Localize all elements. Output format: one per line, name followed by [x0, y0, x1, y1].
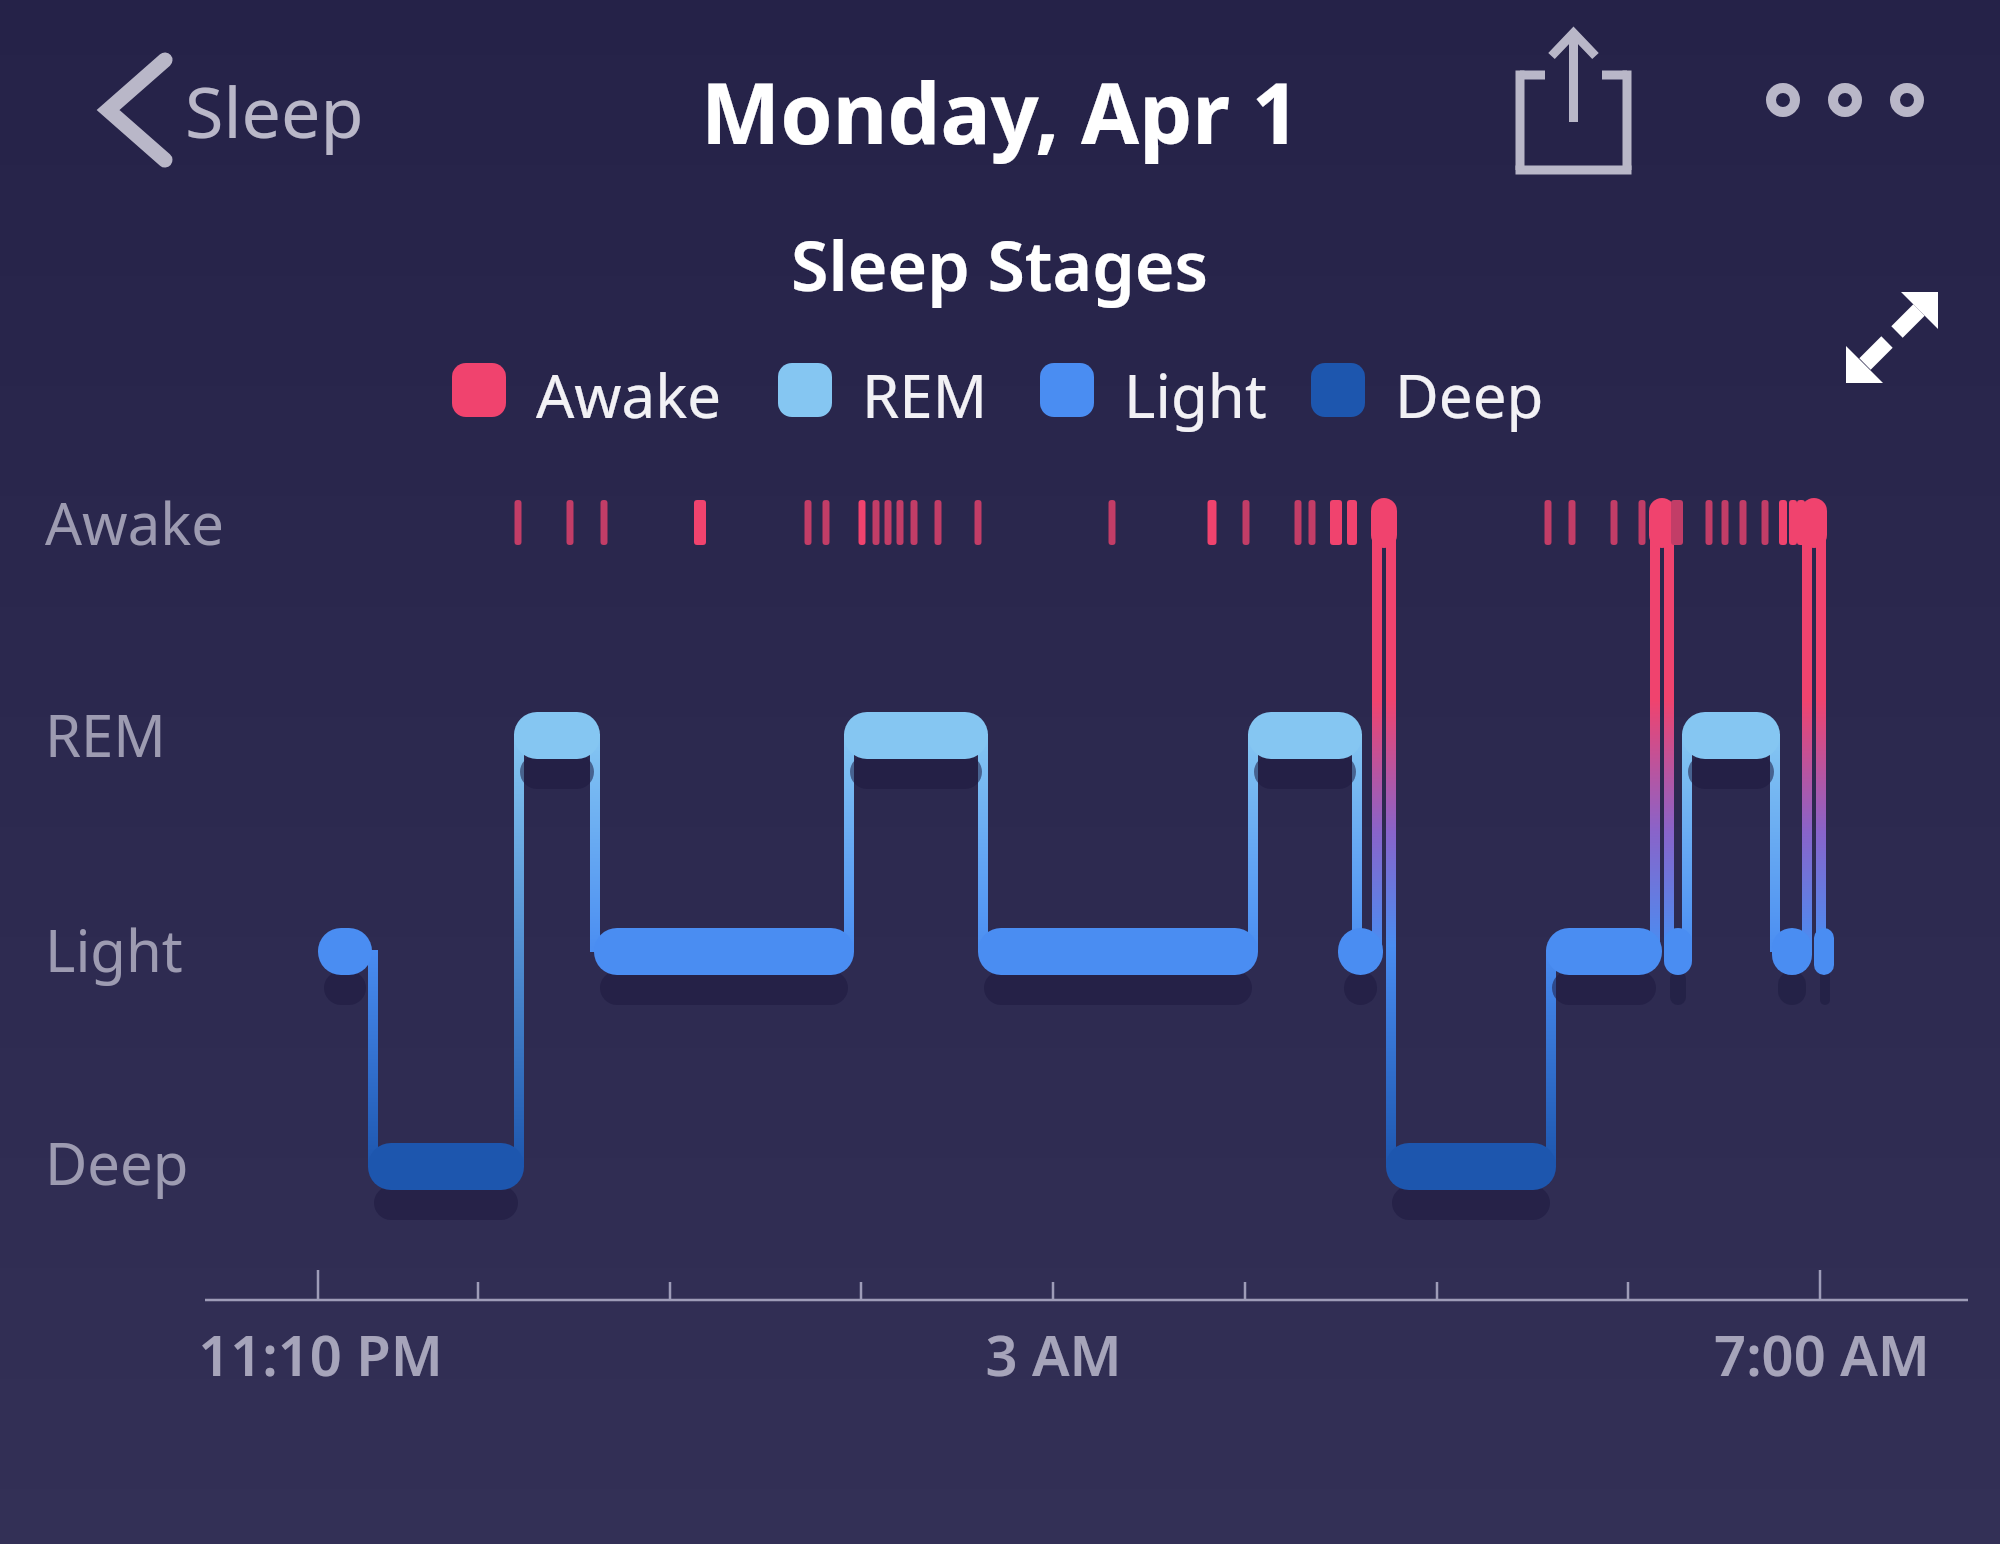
staticText: Sleep Stages: [791, 218, 1209, 311]
staticText: 11:10 PM: [198, 1316, 443, 1386]
staticText: Light: [1124, 354, 1267, 436]
button[interactable]: [1835, 280, 1950, 395]
staticText: REM: [862, 354, 988, 436]
staticText: Awake: [45, 483, 224, 562]
staticText: Sleep: [185, 63, 364, 158]
staticText: Deep: [45, 1123, 189, 1202]
staticText: Deep: [1395, 354, 1544, 436]
button[interactable]: [1755, 70, 1935, 130]
staticText: 3 AM: [985, 1316, 1122, 1386]
staticText: 7:00 AM: [1714, 1316, 1930, 1386]
staticText: Awake: [536, 354, 722, 436]
button[interactable]: Sleep: [60, 40, 390, 180]
staticText: Light: [45, 910, 183, 989]
button[interactable]: [1500, 20, 1645, 180]
staticText: Monday, Apr 1: [701, 54, 1300, 168]
staticText: REM: [45, 695, 166, 774]
